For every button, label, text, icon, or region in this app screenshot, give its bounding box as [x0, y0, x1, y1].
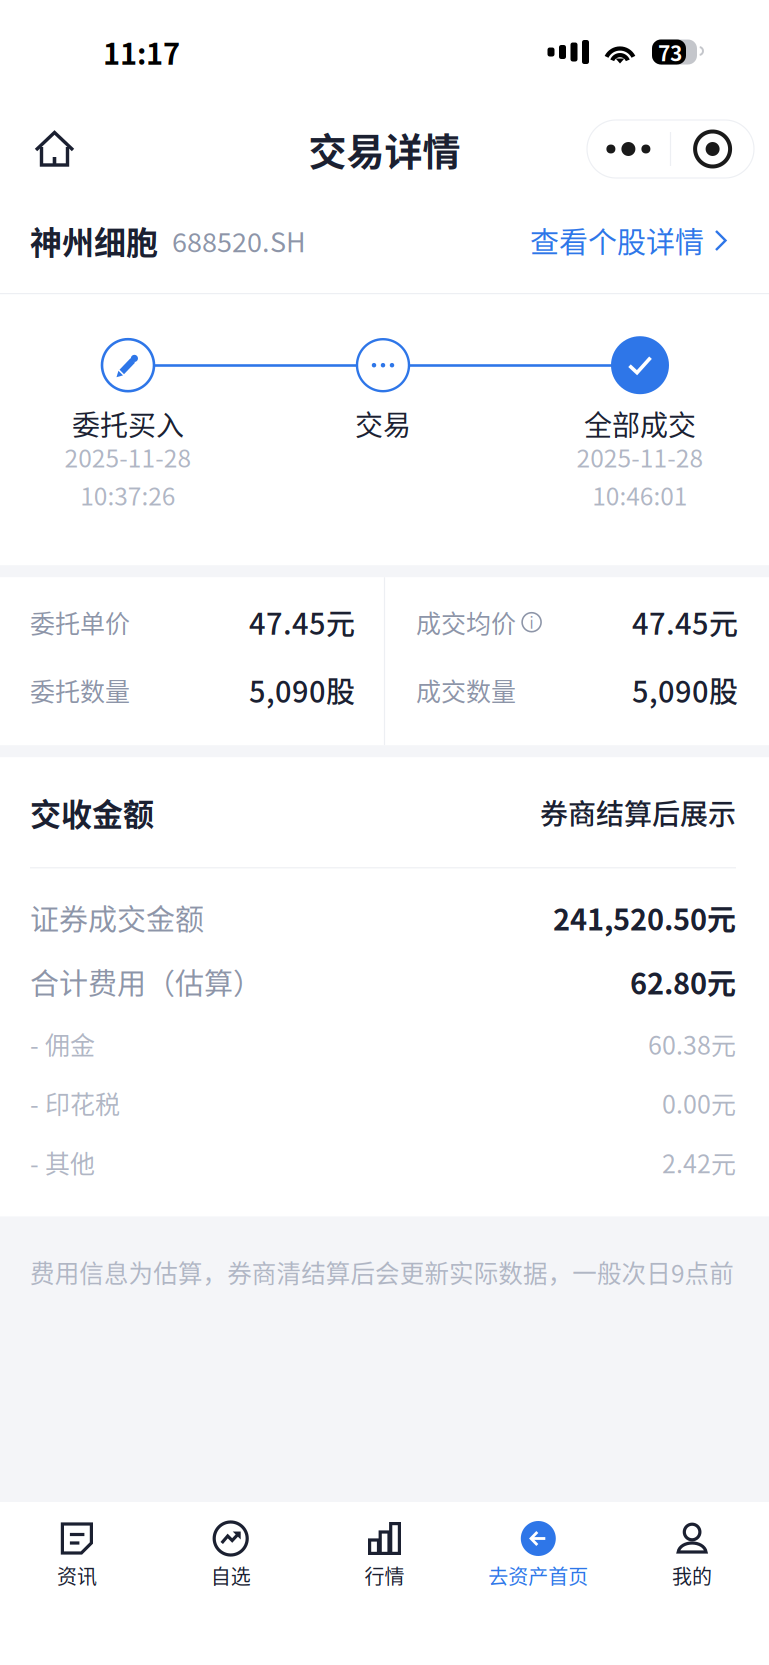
staticText: 62.80元 [630, 961, 736, 1003]
staticText: 10:46:01 [592, 477, 688, 512]
staticText: 去资产首页 [488, 1561, 588, 1590]
staticText: 费用信息为估算，券商清结算后会更新实际数据，一般次日9点前 [30, 1254, 734, 1290]
staticText: 我的 [672, 1561, 712, 1590]
staticText: 成交数量 [416, 672, 516, 708]
staticText: 自选 [211, 1561, 251, 1590]
staticText: 5,090股 [632, 669, 738, 711]
staticText: 委托数量 [30, 672, 130, 708]
staticText: 10:37:26 [80, 477, 176, 512]
button[interactable]: Close [671, 121, 754, 177]
staticText: 全部成交 [584, 403, 696, 444]
staticText: 688520.SH [172, 221, 306, 260]
staticText: 交易详情 [308, 121, 460, 176]
staticText: 委托单价 [30, 604, 130, 640]
staticText: 11:17 [103, 31, 180, 73]
button[interactable]: 行情 [308, 1502, 461, 1665]
staticText: 券商结算后展示 [540, 792, 736, 832]
staticText: - 其他 [30, 1144, 95, 1180]
staticText: 委托买入 [72, 403, 184, 444]
staticText: 查看个股详情 [530, 219, 704, 261]
staticText: 证券成交金额 [30, 897, 204, 939]
staticText: 60.38元 [648, 1026, 736, 1062]
staticText: 2025-11-28 [65, 439, 191, 474]
button[interactable]: More options [587, 121, 670, 177]
staticText: 0.00元 [662, 1085, 736, 1121]
staticText: 241,520.50元 [553, 897, 736, 939]
staticText: 行情 [364, 1561, 404, 1590]
staticText: 47.45元 [249, 601, 355, 643]
staticText: 资讯 [57, 1561, 97, 1590]
button[interactable]: 查看个股详情 [530, 219, 728, 261]
staticText: 成交均价 [416, 604, 516, 640]
staticText: 合计费用（估算） [30, 961, 262, 1003]
button[interactable]: Home [0, 114, 75, 184]
staticText: 神州细胞 [30, 217, 158, 264]
button[interactable]: 去资产首页 [461, 1502, 615, 1665]
staticText: 2.42元 [662, 1144, 736, 1180]
staticText: 73 [658, 37, 682, 67]
button[interactable]: 资讯 [0, 1502, 154, 1665]
staticText: - 佣金 [30, 1026, 95, 1062]
staticText: i [530, 611, 534, 633]
staticText: 5,090股 [249, 669, 355, 711]
staticText: 2025-11-28 [577, 439, 703, 474]
button[interactable]: 自选 [154, 1502, 308, 1665]
staticText: 47.45元 [632, 601, 738, 643]
staticText: 交收金额 [30, 790, 154, 835]
button[interactable]: 我的 [615, 1502, 769, 1665]
staticText: - 印花税 [30, 1085, 120, 1121]
staticText: 交易 [355, 403, 411, 444]
